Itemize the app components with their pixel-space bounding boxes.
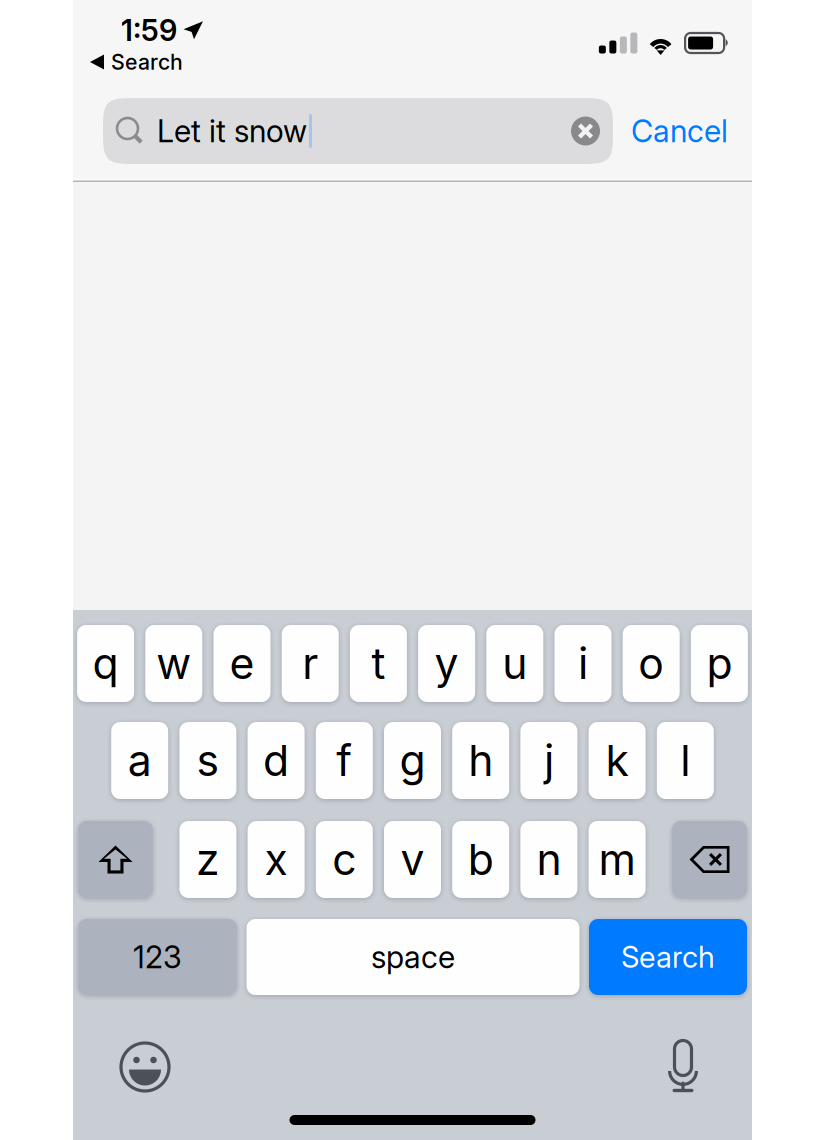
staticText: w: [156, 638, 191, 689]
staticText: g: [399, 735, 425, 786]
button[interactable]: f: [316, 722, 373, 799]
button[interactable]: w: [145, 625, 202, 702]
button[interactable]: e: [213, 625, 270, 702]
staticText: v: [400, 834, 424, 885]
button[interactable]: r: [282, 625, 339, 702]
button[interactable]: y: [418, 625, 475, 702]
button[interactable]: Delete: [672, 821, 747, 898]
staticText: s: [196, 735, 219, 786]
staticText: Let it snow: [157, 112, 307, 149]
button[interactable]: s: [179, 722, 236, 799]
staticText: Search: [621, 939, 715, 975]
button[interactable]: n: [520, 821, 577, 898]
staticText: 1:59: [121, 12, 177, 48]
button[interactable]: c: [316, 821, 373, 898]
button[interactable]: o: [623, 625, 680, 702]
button[interactable]: q: [77, 625, 134, 702]
button[interactable]: Shift: [78, 821, 153, 898]
staticText: d: [263, 735, 289, 786]
button[interactable]: v: [384, 821, 441, 898]
button[interactable]: Cancel: [613, 98, 738, 164]
staticText: Cancel: [631, 112, 728, 149]
staticText: u: [502, 638, 527, 689]
button[interactable]: space: [246, 919, 579, 995]
staticText: Search: [111, 49, 183, 75]
staticText: q: [93, 638, 119, 689]
staticText: p: [706, 638, 732, 689]
staticText: x: [265, 834, 288, 885]
button[interactable]: l: [657, 722, 714, 799]
staticText: i: [578, 638, 588, 689]
button[interactable]: Search: [589, 919, 747, 995]
button[interactable]: Dictation: [667, 1041, 699, 1093]
button[interactable]: m: [589, 821, 646, 898]
button[interactable]: u: [486, 625, 543, 702]
staticText: t: [371, 638, 385, 689]
staticText: a: [128, 735, 152, 786]
staticText: y: [435, 638, 459, 689]
staticText: 123: [133, 938, 182, 975]
button[interactable]: i: [554, 625, 611, 702]
button[interactable]: d: [248, 722, 305, 799]
button[interactable]: Emoji keyboard: [119, 1041, 171, 1093]
staticText: z: [196, 834, 220, 885]
staticText: m: [599, 834, 636, 885]
staticText: r: [302, 638, 318, 689]
button[interactable]: p: [691, 625, 748, 702]
button[interactable]: x: [248, 821, 305, 898]
staticText: b: [468, 834, 494, 885]
staticText: n: [536, 834, 561, 885]
button[interactable]: b: [452, 821, 509, 898]
staticText: l: [680, 735, 690, 786]
staticText: c: [332, 834, 356, 885]
staticText: h: [468, 735, 493, 786]
button[interactable]: j: [520, 722, 577, 799]
staticText: space: [371, 938, 455, 975]
button[interactable]: t: [350, 625, 407, 702]
staticText: k: [606, 735, 629, 786]
button[interactable]: 123: [78, 919, 237, 995]
staticText: f: [336, 735, 352, 786]
button[interactable]: z: [179, 821, 236, 898]
button[interactable]: g: [384, 722, 441, 799]
button[interactable]: h: [452, 722, 509, 799]
staticText: o: [638, 638, 664, 689]
staticText: j: [544, 735, 554, 786]
button[interactable]: Search: [73, 51, 752, 73]
button[interactable]: a: [111, 722, 168, 799]
staticText: e: [229, 638, 254, 689]
button[interactable]: k: [589, 722, 646, 799]
